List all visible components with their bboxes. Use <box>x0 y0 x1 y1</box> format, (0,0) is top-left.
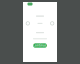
staticText: Continue <box>33 44 47 47</box>
button[interactable]: Continue <box>33 43 47 48</box>
